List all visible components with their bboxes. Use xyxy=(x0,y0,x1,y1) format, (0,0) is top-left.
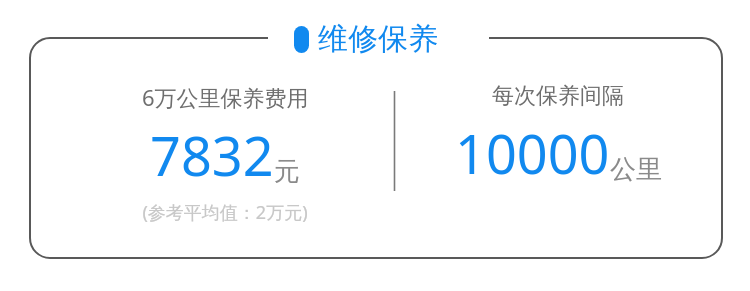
staticText: 每次保养间隔 xyxy=(492,82,624,110)
button[interactable]: 6万公里保养费用 xyxy=(62,82,388,225)
staticText: 公里 xyxy=(610,153,662,186)
staticText: 7832 xyxy=(150,118,274,192)
staticText: 元 xyxy=(274,155,300,188)
staticText: (参考平均值：2万元) xyxy=(142,200,308,225)
staticText: 6万公里保养费用 xyxy=(142,82,309,112)
other: 维修保养 xyxy=(292,24,312,56)
button[interactable]: 维修保养 xyxy=(318,20,438,58)
staticText: 维修保养 xyxy=(318,20,438,58)
staticText: 10000 xyxy=(455,116,610,190)
button[interactable]: 每次保养间隔 xyxy=(400,82,716,190)
